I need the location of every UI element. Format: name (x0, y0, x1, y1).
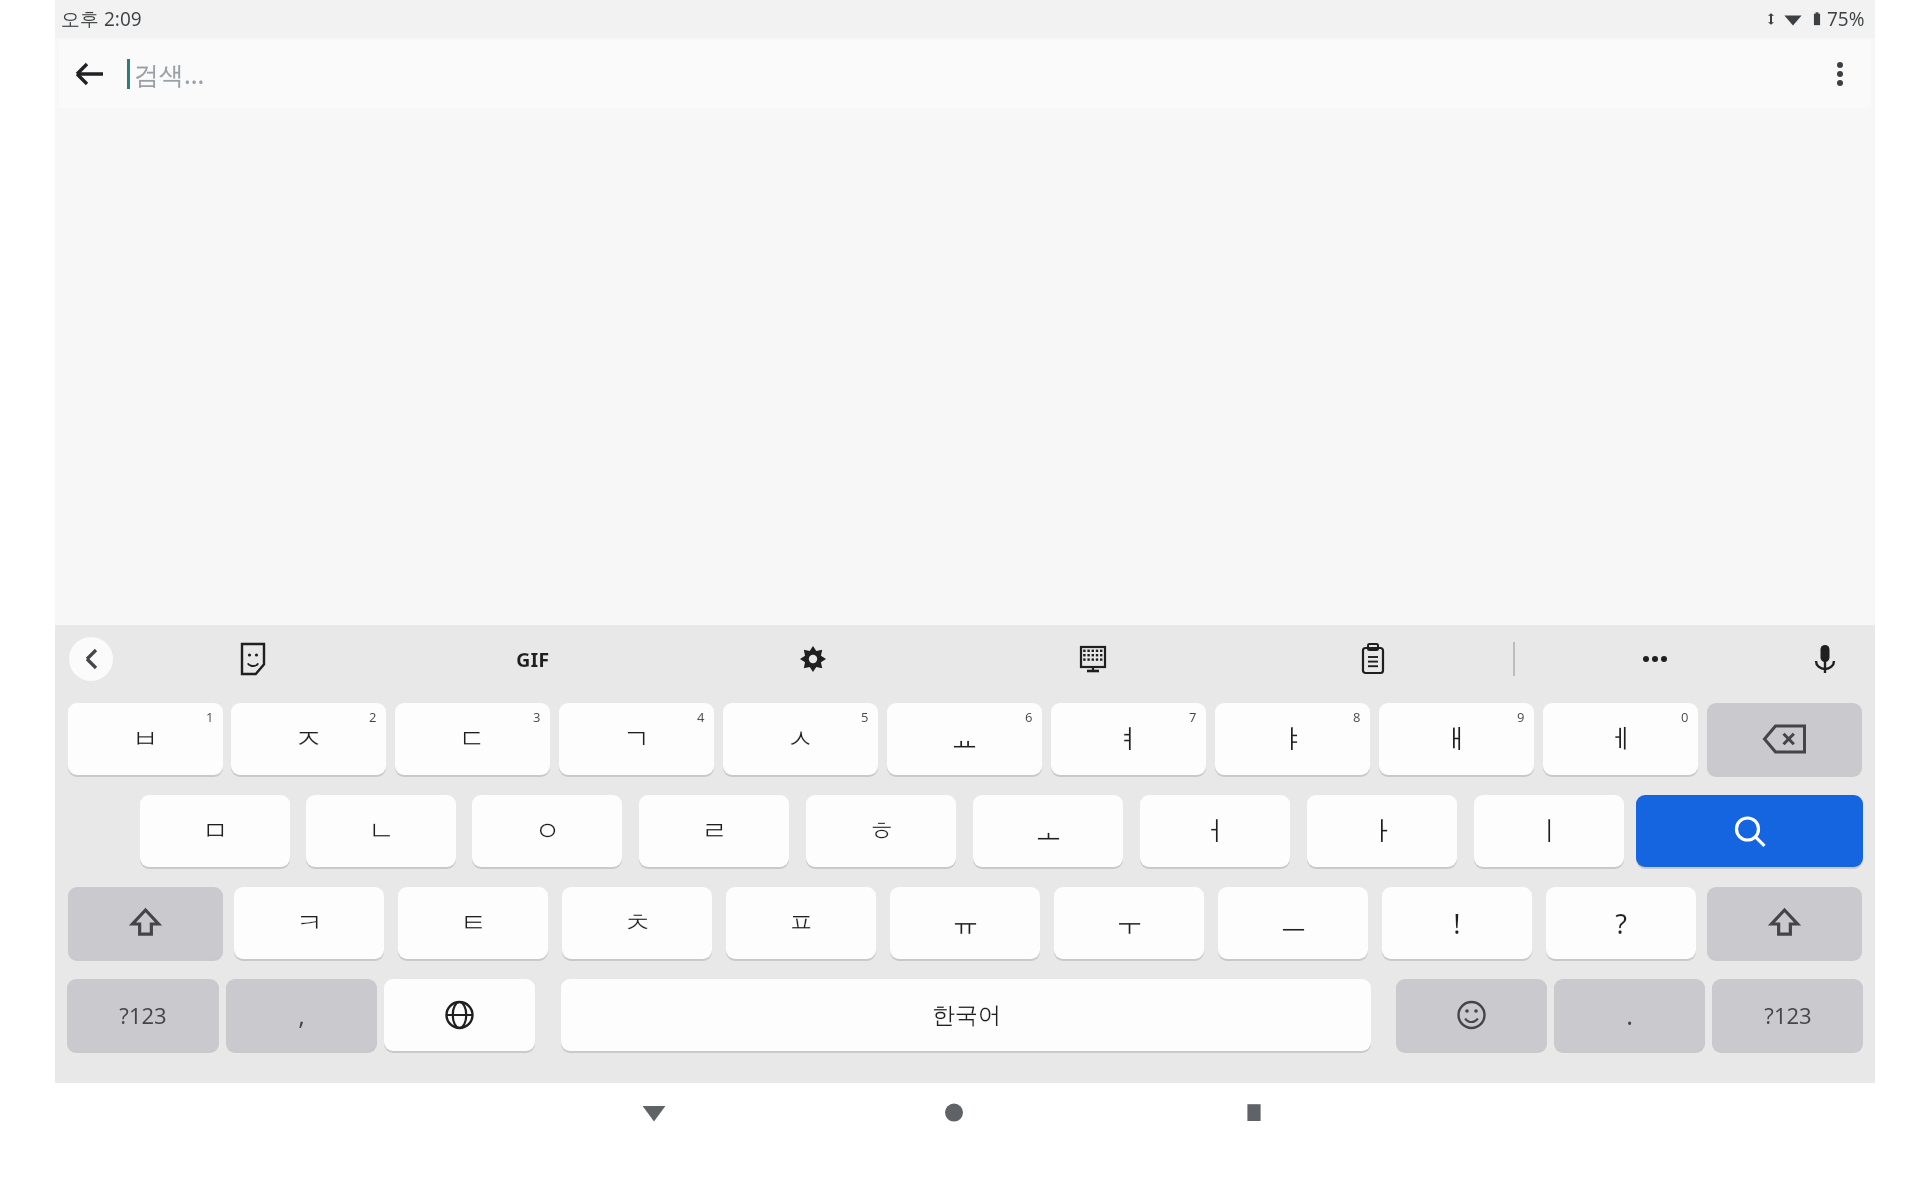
button[interactable]: ㅍ (726, 887, 876, 959)
staticText: ?123 (119, 1000, 167, 1030)
button[interactable]: ㅌ (398, 887, 548, 959)
button[interactable]: Recent apps (1104, 1097, 1404, 1153)
button[interactable]: ㅡ (1218, 887, 1368, 959)
button[interactable]: ㅅ (723, 703, 878, 775)
button[interactable]: ㅏ (1307, 795, 1457, 867)
staticText: ?123 (1764, 1000, 1812, 1030)
staticText: ㅔ (1607, 722, 1634, 756)
staticText: ㅣ (1536, 814, 1563, 848)
button[interactable]: More options (1809, 43, 1871, 105)
staticText: ㄷ (459, 722, 486, 756)
button[interactable]: Shift (1707, 887, 1862, 959)
staticText: ㅜ (1116, 906, 1143, 940)
staticText: , (298, 998, 305, 1032)
button[interactable]: ㅓ (1140, 795, 1290, 867)
staticText: ㅗ (1035, 814, 1062, 848)
button[interactable]: ㅛ (887, 703, 1042, 775)
staticText: 한국어 (932, 1001, 1001, 1030)
staticText: ? (1615, 905, 1627, 942)
button[interactable]: Clipboard (1347, 633, 1399, 685)
button[interactable]: 한국어 (561, 979, 1371, 1051)
button[interactable]: Expand toolbar (69, 637, 113, 681)
staticText: 75% (1827, 6, 1865, 32)
button[interactable]: Keyboard modes (1067, 633, 1119, 685)
staticText: 1 (206, 708, 214, 726)
staticText: 검색... (134, 57, 205, 91)
staticText: 5 (861, 708, 869, 726)
staticText: ㅏ (1369, 814, 1396, 848)
staticText: 7 (1189, 708, 1197, 726)
button[interactable]: GIF (507, 633, 559, 685)
staticText: ㅍ (788, 906, 815, 940)
button[interactable]: ㄴ (306, 795, 456, 867)
button[interactable]: ? (1546, 887, 1696, 959)
staticText: . (1626, 998, 1633, 1032)
button[interactable]: . (1554, 979, 1705, 1051)
staticText: 오후 2:09 (61, 6, 142, 32)
button[interactable]: ㅕ (1051, 703, 1206, 775)
button[interactable]: ㅠ (890, 887, 1040, 959)
staticText: ㅐ (1443, 722, 1470, 756)
staticText: ㅡ (1280, 906, 1307, 940)
button[interactable]: Home (804, 1097, 1104, 1153)
staticText: ㅌ (460, 906, 487, 940)
button[interactable]: Shift (68, 887, 223, 959)
button[interactable]: ㅁ (140, 795, 290, 867)
staticText: ㅁ (202, 814, 229, 848)
button[interactable]: ㅗ (973, 795, 1123, 867)
staticText: ㄱ (623, 722, 650, 756)
staticText: ㅠ (952, 906, 979, 940)
staticText: 6 (1025, 708, 1033, 726)
staticText: ㅑ (1279, 722, 1306, 756)
button[interactable]: ㄹ (639, 795, 789, 867)
button[interactable]: ㅐ (1379, 703, 1534, 775)
button[interactable]: ㅑ (1215, 703, 1370, 775)
staticText: ㅈ (295, 722, 322, 756)
button[interactable]: Back (59, 43, 121, 105)
staticText: ㅕ (1115, 722, 1142, 756)
button[interactable]: ㅜ (1054, 887, 1204, 959)
staticText: GIF (516, 646, 550, 673)
button[interactable]: Back (504, 1097, 804, 1153)
button[interactable]: ?123 (67, 979, 219, 1051)
staticText: 8 (1353, 708, 1361, 726)
button[interactable]: More (1629, 633, 1681, 685)
button[interactable]: ㄷ (395, 703, 550, 775)
staticText: ㅓ (1202, 814, 1229, 848)
button[interactable]: Change language (384, 979, 535, 1051)
staticText: ㄴ (368, 814, 395, 848)
button[interactable]: Voice input (1795, 629, 1855, 689)
button[interactable]: ㅣ (1474, 795, 1624, 867)
staticText: 3 (533, 708, 541, 726)
button[interactable]: ㅈ (231, 703, 386, 775)
button[interactable]: , (226, 979, 377, 1051)
button[interactable]: Search (1636, 795, 1863, 867)
button[interactable]: Emoji (1396, 979, 1547, 1051)
button[interactable]: ?123 (1712, 979, 1863, 1051)
staticText: ㄹ (701, 814, 728, 848)
button[interactable]: ! (1382, 887, 1532, 959)
staticText: ! (1453, 905, 1461, 942)
button[interactable]: Stickers (227, 633, 279, 685)
staticText: ㅅ (787, 722, 814, 756)
staticText: 2 (369, 708, 377, 726)
staticText: ㅎ (868, 814, 895, 848)
staticText: 4 (697, 708, 705, 726)
button[interactable]: ㅊ (562, 887, 712, 959)
staticText: 9 (1517, 708, 1525, 726)
staticText: ㅛ (951, 722, 978, 756)
button[interactable]: ㅂ (68, 703, 223, 775)
button[interactable]: ㅎ (806, 795, 956, 867)
button[interactable]: Backspace (1707, 703, 1862, 775)
staticText: ㅇ (534, 814, 561, 848)
staticText: 0 (1681, 708, 1689, 726)
staticText: ㅋ (296, 906, 323, 940)
button[interactable]: ㅔ (1543, 703, 1698, 775)
staticText: ㅊ (624, 906, 651, 940)
button[interactable]: ㅋ (234, 887, 384, 959)
button[interactable]: ㄱ (559, 703, 714, 775)
staticText: ㅂ (132, 722, 159, 756)
button[interactable]: ㅇ (472, 795, 622, 867)
button[interactable]: Settings (787, 633, 839, 685)
